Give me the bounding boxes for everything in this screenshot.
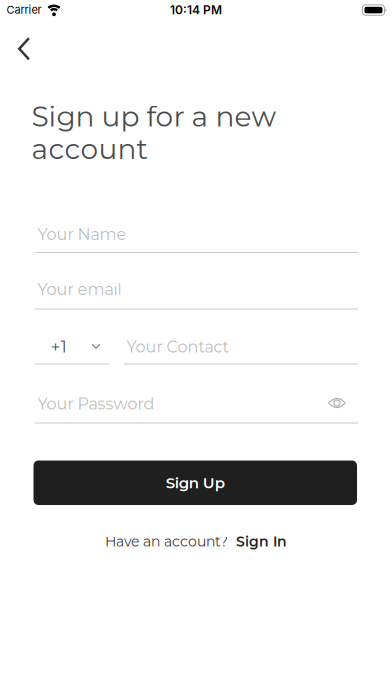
staticText: Sign Up (166, 474, 225, 492)
staticText: Carrier (6, 3, 41, 16)
staticText: Your Contact (126, 337, 228, 356)
staticText: Your Password (37, 394, 154, 413)
staticText: +1 (50, 335, 66, 357)
staticText: Sign In (236, 533, 287, 550)
staticText: Sign up for a new (31, 99, 276, 134)
staticText: 10:14 PM (170, 2, 222, 17)
staticText: account (31, 132, 147, 166)
button[interactable]: Sign In (236, 533, 287, 550)
button[interactable]: Show password (322, 391, 352, 414)
button[interactable]: Country code +1 (35, 331, 109, 361)
staticText: Have an account? (105, 533, 228, 550)
button[interactable]: Back (0, 27, 30, 70)
staticText: Your email (37, 279, 121, 299)
button[interactable]: Sign Up (33, 460, 357, 505)
staticText: Your Name (37, 224, 126, 244)
